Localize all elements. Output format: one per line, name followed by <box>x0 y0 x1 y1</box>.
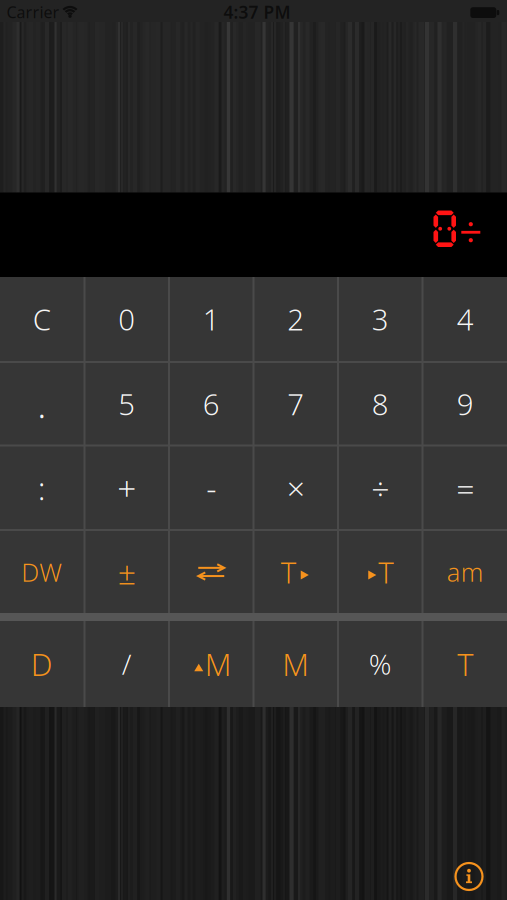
button[interactable]: . <box>0 363 83 444</box>
staticText: : <box>38 466 46 509</box>
staticText: . <box>37 379 46 429</box>
button[interactable]: C <box>0 277 83 361</box>
button[interactable]: ± <box>85 531 168 613</box>
staticText: M <box>205 644 232 684</box>
button[interactable]: × <box>254 446 337 529</box>
button[interactable]: = <box>423 446 507 529</box>
staticText: / <box>122 645 132 683</box>
button[interactable]: Swap <box>170 531 252 613</box>
staticText: 8 <box>372 384 389 423</box>
staticText: T <box>457 644 473 684</box>
button[interactable]: 4 <box>423 277 507 361</box>
button[interactable]: / <box>85 621 168 707</box>
button[interactable]: T <box>254 531 337 613</box>
staticText: Carrier <box>6 1 59 23</box>
staticText: ± <box>118 551 136 593</box>
button[interactable]: am <box>423 531 507 613</box>
staticText: - <box>206 466 216 509</box>
button[interactable]: 6 <box>170 363 252 444</box>
staticText: + <box>117 466 136 510</box>
staticText: 4:37 PM <box>223 0 290 23</box>
button[interactable]: 2 <box>254 277 337 361</box>
button[interactable]: : <box>0 446 83 529</box>
button[interactable]: 0 <box>85 277 168 361</box>
staticText: 2 <box>287 299 304 338</box>
staticText: % <box>369 645 392 683</box>
staticText: 6 <box>203 384 220 423</box>
staticText: T <box>378 552 394 591</box>
button[interactable]: 7 <box>254 363 337 444</box>
button[interactable]: D <box>0 621 83 707</box>
staticText: 7 <box>287 384 304 423</box>
button[interactable]: ÷ <box>339 446 421 529</box>
button[interactable]: Info <box>452 859 486 893</box>
staticText: 3 <box>372 299 389 338</box>
staticText: 1 <box>203 299 220 338</box>
staticText: 4 <box>457 299 474 338</box>
staticText: ÷ <box>371 466 389 509</box>
button[interactable]: - <box>170 446 252 529</box>
button[interactable]: T <box>423 621 507 707</box>
staticText: 0 <box>118 299 135 338</box>
staticText: DW <box>21 555 62 589</box>
button[interactable]: + <box>85 446 168 529</box>
button[interactable]: 5 <box>85 363 168 444</box>
button[interactable]: 9 <box>423 363 507 444</box>
staticText: D <box>31 644 53 684</box>
staticText: am <box>447 555 484 589</box>
staticText: 9 <box>457 384 474 423</box>
button[interactable]: % <box>339 621 421 707</box>
staticText: × <box>287 466 305 509</box>
staticText: M <box>282 644 309 684</box>
button[interactable]: 8 <box>339 363 421 444</box>
button[interactable]: T <box>339 531 421 613</box>
staticText: T <box>281 552 297 591</box>
staticText: 5 <box>118 384 135 423</box>
button[interactable]: 1 <box>170 277 252 361</box>
staticText: = <box>456 466 474 509</box>
button[interactable]: M <box>254 621 337 707</box>
staticText: C <box>33 299 51 338</box>
button[interactable]: M <box>170 621 252 707</box>
button[interactable]: DW <box>0 531 83 613</box>
button[interactable]: 3 <box>339 277 421 361</box>
